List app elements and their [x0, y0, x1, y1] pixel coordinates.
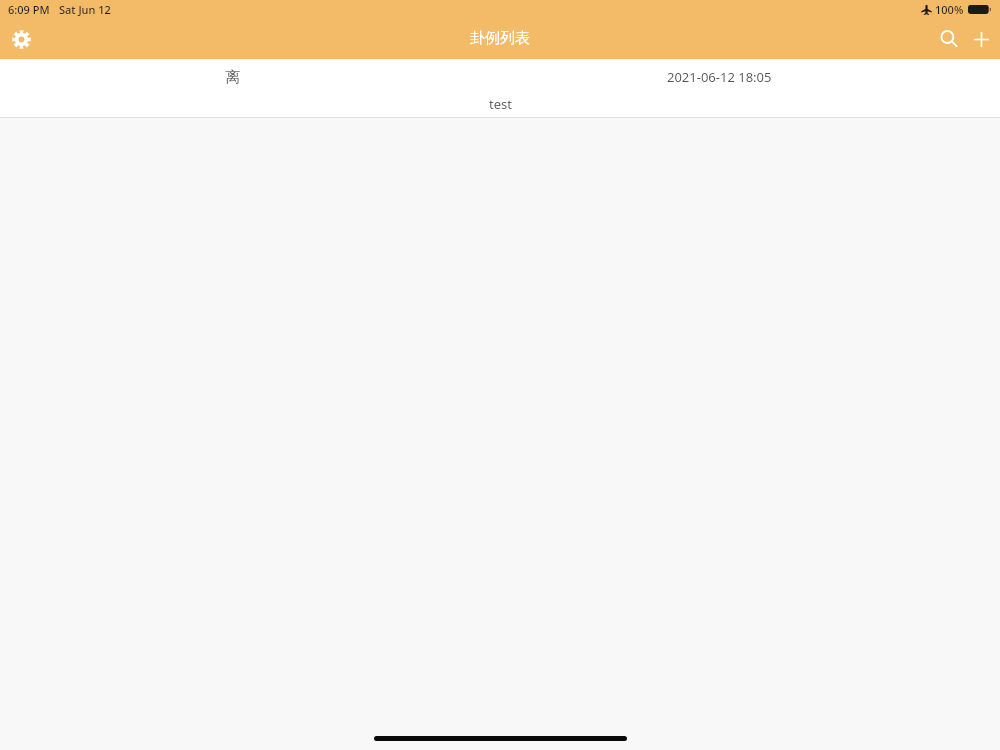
- staticText: 6:09 PM: [8, 2, 50, 17]
- staticText: test: [489, 95, 512, 110]
- staticText: 100%: [935, 2, 964, 17]
- staticText: 2021-06-12 18:05: [667, 68, 772, 86]
- button[interactable]: Search: [933, 23, 965, 55]
- button[interactable]: 离: [0, 59, 1000, 118]
- staticText: 卦例列表: [470, 29, 530, 48]
- staticText: 离: [225, 68, 240, 87]
- button[interactable]: Add: [965, 23, 997, 55]
- staticText: Sat Jun 12: [59, 2, 111, 17]
- button[interactable]: Settings: [5, 23, 37, 55]
